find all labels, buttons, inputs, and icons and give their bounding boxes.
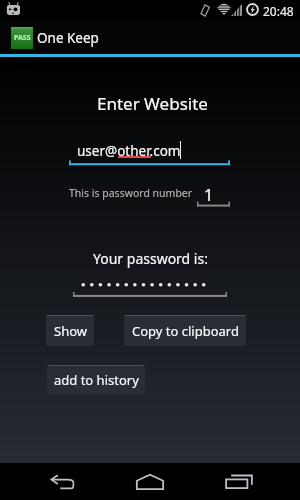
staticText: add to history [54, 371, 139, 389]
button[interactable]: Copy to clipboard [124, 315, 246, 346]
button[interactable]: Recent apps [195, 463, 280, 500]
staticText: PASS [14, 33, 31, 43]
staticText: Copy to clipboard [132, 322, 239, 340]
button[interactable]: add to history [47, 365, 145, 395]
button[interactable]: Show [46, 315, 94, 346]
button[interactable]: Home [107, 463, 193, 500]
button[interactable]: Back [20, 463, 105, 500]
staticText: One Keep [37, 29, 99, 47]
staticText: Enter Website [97, 92, 208, 115]
staticText: user@other.com [77, 142, 181, 160]
staticText: Show [54, 322, 87, 340]
staticText: 20:48 [263, 3, 294, 19]
staticText: Your password is: [93, 249, 208, 268]
staticText: 1 [204, 184, 214, 206]
staticText: This is password number [69, 186, 193, 200]
